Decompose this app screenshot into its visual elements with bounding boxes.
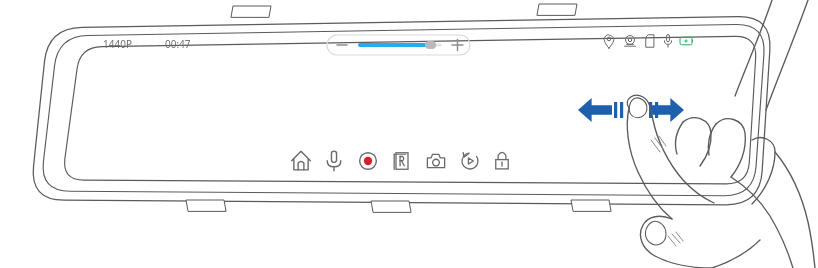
button[interactable]: Zoom level	[353, 33, 447, 57]
button[interactable]: Zoom out	[327, 33, 353, 57]
button[interactable]: Voice control	[321, 148, 348, 175]
button[interactable]: Record	[355, 148, 382, 175]
button[interactable]: Playback	[457, 148, 484, 175]
button[interactable]: Home	[288, 148, 315, 175]
button[interactable]: Zoom in	[444, 33, 470, 57]
staticText: 00:47	[165, 37, 191, 51]
button[interactable]: Photo	[423, 148, 450, 175]
staticText: 1440P	[103, 37, 132, 51]
button[interactable]: Rear camera	[389, 148, 416, 175]
button[interactable]: Lock video	[489, 148, 516, 175]
